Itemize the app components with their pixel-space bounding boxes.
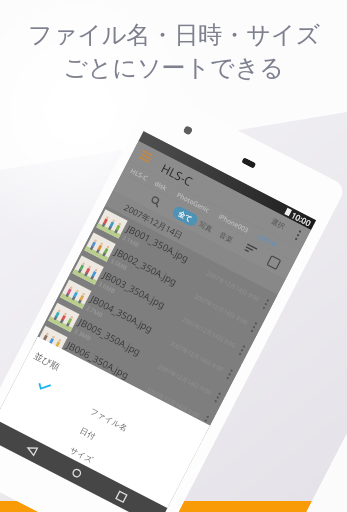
staticText: 3.3MB — [72, 327, 92, 342]
staticText: PhotoGenic — [175, 190, 211, 215]
staticText: ファイル名・日時・サイズ — [28, 20, 320, 50]
button[interactable]: 日付 — [4, 383, 186, 491]
button[interactable]: 写真 — [196, 218, 215, 235]
staticText: iPhone003 — [217, 212, 251, 235]
button[interactable]: Back — [25, 444, 37, 456]
staticText: 日付 — [78, 425, 97, 441]
button[interactable]: サイズ — [0, 402, 176, 511]
button[interactable]: 選択 — [267, 214, 289, 234]
staticText: 写真 — [197, 220, 214, 234]
staticText: 3.6MB — [97, 280, 117, 295]
button[interactable]: JB002_350A.jpg — [81, 229, 265, 341]
staticText: 2.7MB — [84, 304, 104, 319]
button[interactable]: JB005_350A.jpg — [45, 299, 229, 411]
staticText: HLS-C — [129, 166, 149, 183]
button[interactable]: Sort order — [244, 243, 257, 256]
button[interactable]: Recents — [116, 491, 127, 502]
staticText: ファイル名 — [88, 406, 129, 433]
staticText: 2007年12月14日 — [122, 202, 185, 242]
staticText: 選択 — [270, 216, 286, 231]
staticText: JB003_350A.jpg — [100, 268, 168, 312]
button[interactable]: Menu — [139, 150, 153, 163]
staticText: 2007年12月14日 9:00 — [145, 386, 201, 420]
staticText: disk — [153, 179, 169, 193]
button[interactable]: More options — [294, 229, 302, 241]
staticText: 3.0MB — [109, 257, 128, 272]
button[interactable]: JB006_350A.jpg — [33, 322, 217, 434]
staticText: 音楽 — [218, 230, 234, 244]
staticText: ごとにソートできる — [63, 53, 284, 83]
staticText: 全て — [177, 209, 194, 224]
button[interactable]: Home — [71, 467, 83, 479]
staticText: 2007年 — [256, 232, 280, 250]
staticText: HLS-C — [159, 160, 196, 189]
staticText: 3.1MB — [121, 234, 140, 249]
button[interactable]: 全て — [171, 204, 200, 228]
staticText: JB002_350A.jpg — [112, 245, 180, 288]
button[interactable]: JB004_350A.jpg — [57, 276, 241, 388]
staticText: JB006_350A.jpg — [64, 339, 132, 382]
staticText: JB005_350A.jpg — [76, 315, 143, 359]
button[interactable]: 音楽 — [216, 229, 236, 246]
button[interactable]: Search — [149, 195, 162, 208]
button[interactable]: JB001_350A.jpg — [93, 206, 277, 318]
staticText: JB004_350A.jpg — [88, 292, 155, 336]
button[interactable]: JB003_350A.jpg — [69, 252, 254, 364]
staticText: JB001_350A.jpg — [124, 222, 192, 265]
button[interactable]: Select — [267, 256, 281, 269]
staticText: 2007年12月14日 9:00 — [205, 269, 261, 303]
staticText: 並び順 — [32, 350, 62, 372]
button[interactable]: ファイル名 — [14, 363, 196, 472]
staticText: 10:00 — [290, 209, 313, 228]
staticText: サイズ — [68, 445, 95, 465]
staticText: 3.0MB — [61, 350, 80, 366]
